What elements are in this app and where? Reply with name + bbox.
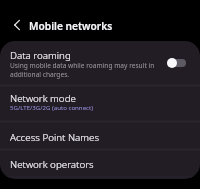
staticText: Mobile networks bbox=[29, 19, 113, 33]
button[interactable]: Navigate up bbox=[7, 15, 27, 35]
staticText: Network mode bbox=[10, 92, 76, 102]
button[interactable]: Data roaming bbox=[0, 41, 200, 85]
staticText: 5G/LTE/3G/2G (auto connect) bbox=[10, 103, 94, 111]
staticText: Data roaming bbox=[10, 49, 71, 62]
button[interactable]: Access Point Names bbox=[0, 123, 200, 151]
button[interactable]: Data roaming switch, off bbox=[167, 57, 186, 68]
staticText: Using mobile data while roaming may resu… bbox=[10, 61, 160, 79]
staticText: Access Point Names bbox=[10, 131, 100, 144]
staticText: Network operators bbox=[10, 158, 94, 171]
button[interactable]: Network operators bbox=[0, 150, 200, 178]
button[interactable]: Network mode bbox=[0, 85, 200, 120]
